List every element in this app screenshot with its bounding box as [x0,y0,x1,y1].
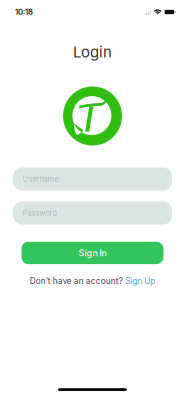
button[interactable]: Sign In [21,242,163,264]
staticText: Username [22,174,58,183]
staticText: Don't have an account? [30,276,123,286]
staticText: Login [73,43,112,61]
button[interactable]: Sign Up [125,276,155,286]
staticText: Sign Up [125,276,155,286]
staticText: 10:18 [15,7,33,17]
staticText: Password [22,208,57,217]
staticText: Sign In [78,247,106,258]
button[interactable]: Password [13,201,172,224]
button[interactable]: Username [13,167,172,190]
